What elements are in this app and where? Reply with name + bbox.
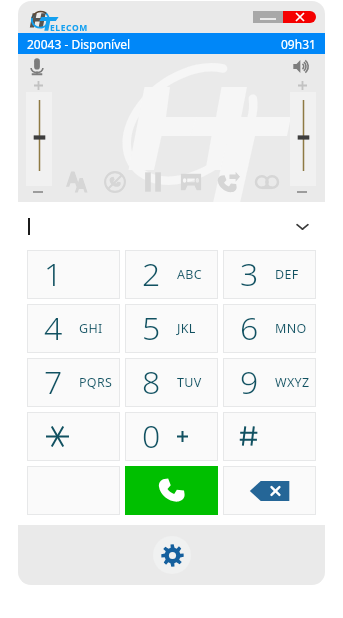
staticText: 4 (44, 306, 63, 350)
staticText: 09h31 (281, 36, 316, 52)
button[interactable]: 3 (223, 250, 316, 299)
button[interactable]: Speaker (293, 58, 309, 75)
staticText: 20043 - Disponível (27, 36, 131, 52)
button[interactable]: 4 (27, 304, 120, 353)
button[interactable]: 9 (223, 358, 316, 407)
staticText: WXYZ (275, 374, 310, 391)
button[interactable]: Minimize (253, 11, 283, 23)
staticText: PQRS (79, 374, 113, 391)
button[interactable]: Number input (18, 202, 325, 250)
button[interactable]: Microphone (29, 58, 45, 75)
button[interactable]: Backspace (223, 466, 316, 515)
staticText: GHI (79, 320, 103, 337)
button[interactable]: 6 (223, 304, 316, 353)
button[interactable]: Close (283, 11, 316, 23)
button[interactable] (223, 412, 316, 461)
button[interactable]: Font size (63, 168, 91, 196)
button[interactable]: 5 (125, 304, 218, 353)
staticText: 9 (240, 360, 259, 404)
staticText: 3 (240, 252, 259, 296)
button[interactable]: Voicemail (253, 168, 281, 196)
staticText: 2 (142, 252, 161, 296)
button[interactable]: Record (177, 168, 205, 196)
button[interactable]: 1 (27, 250, 120, 299)
staticText: 8 (142, 360, 161, 404)
button[interactable]: Mic volume (26, 92, 52, 186)
button[interactable] (27, 412, 120, 461)
staticText: 7 (44, 360, 63, 404)
staticText: 5 (142, 306, 161, 350)
staticText: 6 (240, 306, 259, 350)
button[interactable]: 8 (125, 358, 218, 407)
button[interactable]: Pause (139, 168, 167, 196)
button[interactable]: More options (27, 466, 120, 515)
button[interactable]: Reject call (101, 168, 129, 196)
staticText: 1 (44, 252, 63, 296)
button[interactable]: Call (125, 466, 218, 515)
button[interactable]: Settings (153, 536, 191, 574)
staticText: ELECOM (50, 22, 88, 34)
staticText: ABC (177, 266, 202, 283)
staticText: MNO (275, 320, 307, 337)
button[interactable]: 7 (27, 358, 120, 407)
staticText: TUV (177, 374, 202, 391)
button[interactable]: Transfer call (215, 168, 243, 196)
button[interactable]: Speaker volume (290, 92, 316, 186)
staticText: 0 (142, 414, 161, 458)
staticText: JKL (177, 320, 196, 337)
staticText: DEF (275, 266, 299, 283)
button[interactable]: 0 (125, 412, 218, 461)
button[interactable]: 2 (125, 250, 218, 299)
